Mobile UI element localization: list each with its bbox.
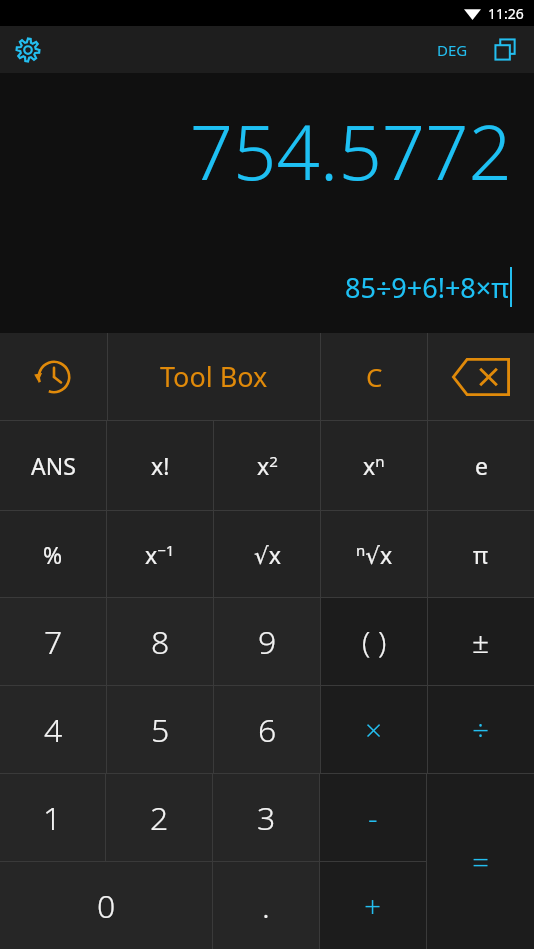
- button[interactable]: %: [0, 511, 106, 597]
- staticText: 7: [44, 620, 63, 664]
- staticText: Tool Box: [160, 358, 268, 395]
- button[interactable]: x−1: [107, 511, 213, 597]
- staticText: xn: [363, 450, 385, 481]
- staticText: +: [364, 885, 382, 926]
- staticText: n√x: [356, 539, 393, 570]
- button[interactable]: 9: [214, 598, 320, 685]
- button[interactable]: 3: [213, 774, 319, 861]
- button[interactable]: =: [427, 774, 534, 949]
- staticText: 1: [43, 796, 62, 840]
- staticText: =: [472, 841, 490, 882]
- button[interactable]: 5: [107, 686, 213, 773]
- button[interactable]: 2: [106, 774, 212, 861]
- staticText: ÷: [472, 709, 490, 750]
- staticText: 3: [257, 796, 276, 840]
- button[interactable]: n√x: [321, 511, 427, 597]
- staticText: ANS: [31, 450, 76, 481]
- staticText: √x: [254, 539, 281, 570]
- staticText: 5: [151, 708, 170, 752]
- button[interactable]: Copy: [488, 32, 524, 68]
- button[interactable]: ( ): [321, 598, 427, 685]
- staticText: .: [262, 884, 270, 928]
- staticText: π: [473, 539, 489, 570]
- staticText: ( ): [362, 621, 387, 662]
- button[interactable]: xn: [321, 421, 427, 510]
- staticText: x−1: [145, 539, 175, 570]
- staticText: e: [475, 450, 488, 481]
- staticText: 754.5772: [189, 99, 512, 203]
- button[interactable]: x2: [214, 421, 320, 510]
- staticText: %: [43, 539, 63, 570]
- staticText: 6: [258, 708, 277, 752]
- button[interactable]: e: [428, 421, 534, 510]
- button[interactable]: Settings: [10, 32, 46, 68]
- button[interactable]: 4: [0, 686, 106, 773]
- button[interactable]: 7: [0, 598, 106, 685]
- button[interactable]: History: [0, 333, 107, 420]
- staticText: x2: [257, 450, 278, 481]
- staticText: 2: [150, 796, 169, 840]
- staticText: 9: [258, 620, 277, 664]
- button[interactable]: 8: [107, 598, 213, 685]
- button[interactable]: ±: [428, 598, 534, 685]
- button[interactable]: √x: [214, 511, 320, 597]
- button[interactable]: C: [321, 333, 427, 420]
- button[interactable]: ANS: [0, 421, 106, 510]
- staticText: x!: [151, 450, 170, 481]
- staticText: 85÷9+6!+8×π: [345, 269, 509, 306]
- button[interactable]: 1: [0, 774, 105, 861]
- button[interactable]: Backspace: [428, 333, 534, 420]
- button[interactable]: ×: [321, 686, 427, 773]
- staticText: 8: [151, 620, 170, 664]
- button[interactable]: -: [320, 774, 426, 861]
- button[interactable]: 6: [214, 686, 320, 773]
- button[interactable]: .: [213, 862, 319, 949]
- button[interactable]: 0: [0, 862, 212, 949]
- button[interactable]: ÷: [428, 686, 534, 773]
- button[interactable]: x!: [107, 421, 213, 510]
- staticText: DEG: [437, 40, 468, 60]
- staticText: 0: [97, 884, 116, 928]
- staticText: C: [366, 359, 383, 394]
- staticText: 4: [44, 708, 63, 752]
- staticText: -: [368, 797, 378, 838]
- staticText: 11:26: [488, 4, 524, 23]
- button[interactable]: DEG: [431, 34, 474, 66]
- staticText: ±: [472, 621, 490, 662]
- staticText: ×: [365, 709, 383, 750]
- button[interactable]: +: [320, 862, 426, 949]
- button[interactable]: Tool Box: [108, 333, 320, 420]
- button[interactable]: π: [428, 511, 534, 597]
